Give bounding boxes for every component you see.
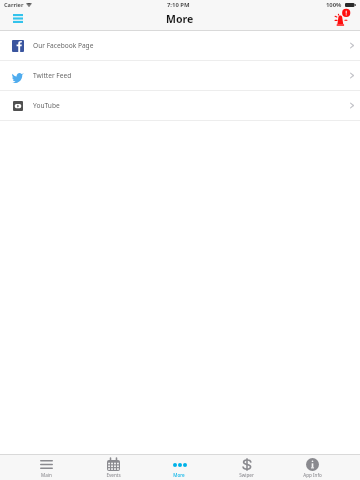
button[interactable]: Twitter Feed [0,61,360,91]
button[interactable]: Menu [6,9,29,27]
staticText: YouTube [33,101,60,110]
staticText: Main [41,472,52,478]
staticText: Carrier [4,1,24,9]
staticText: Twitter Feed [33,71,72,80]
button[interactable]: More [149,455,209,480]
staticText: More [173,472,185,478]
staticText: Swiper [239,472,254,478]
staticText: More [166,12,194,26]
button[interactable]: App Info [282,455,342,480]
button[interactable]: YouTube [0,91,360,121]
button[interactable]: Our Facebook Page [0,31,360,61]
staticText: App Info [303,472,322,478]
staticText: 7:10 PM [167,1,190,9]
staticText: Our Facebook Page [33,41,94,50]
button[interactable]: Swiper [216,455,276,480]
button[interactable]: Alerts [332,6,356,28]
staticText: 100% [326,1,342,9]
button[interactable]: Events [83,455,143,480]
staticText: Events [106,472,121,478]
button[interactable]: Main [16,455,76,480]
